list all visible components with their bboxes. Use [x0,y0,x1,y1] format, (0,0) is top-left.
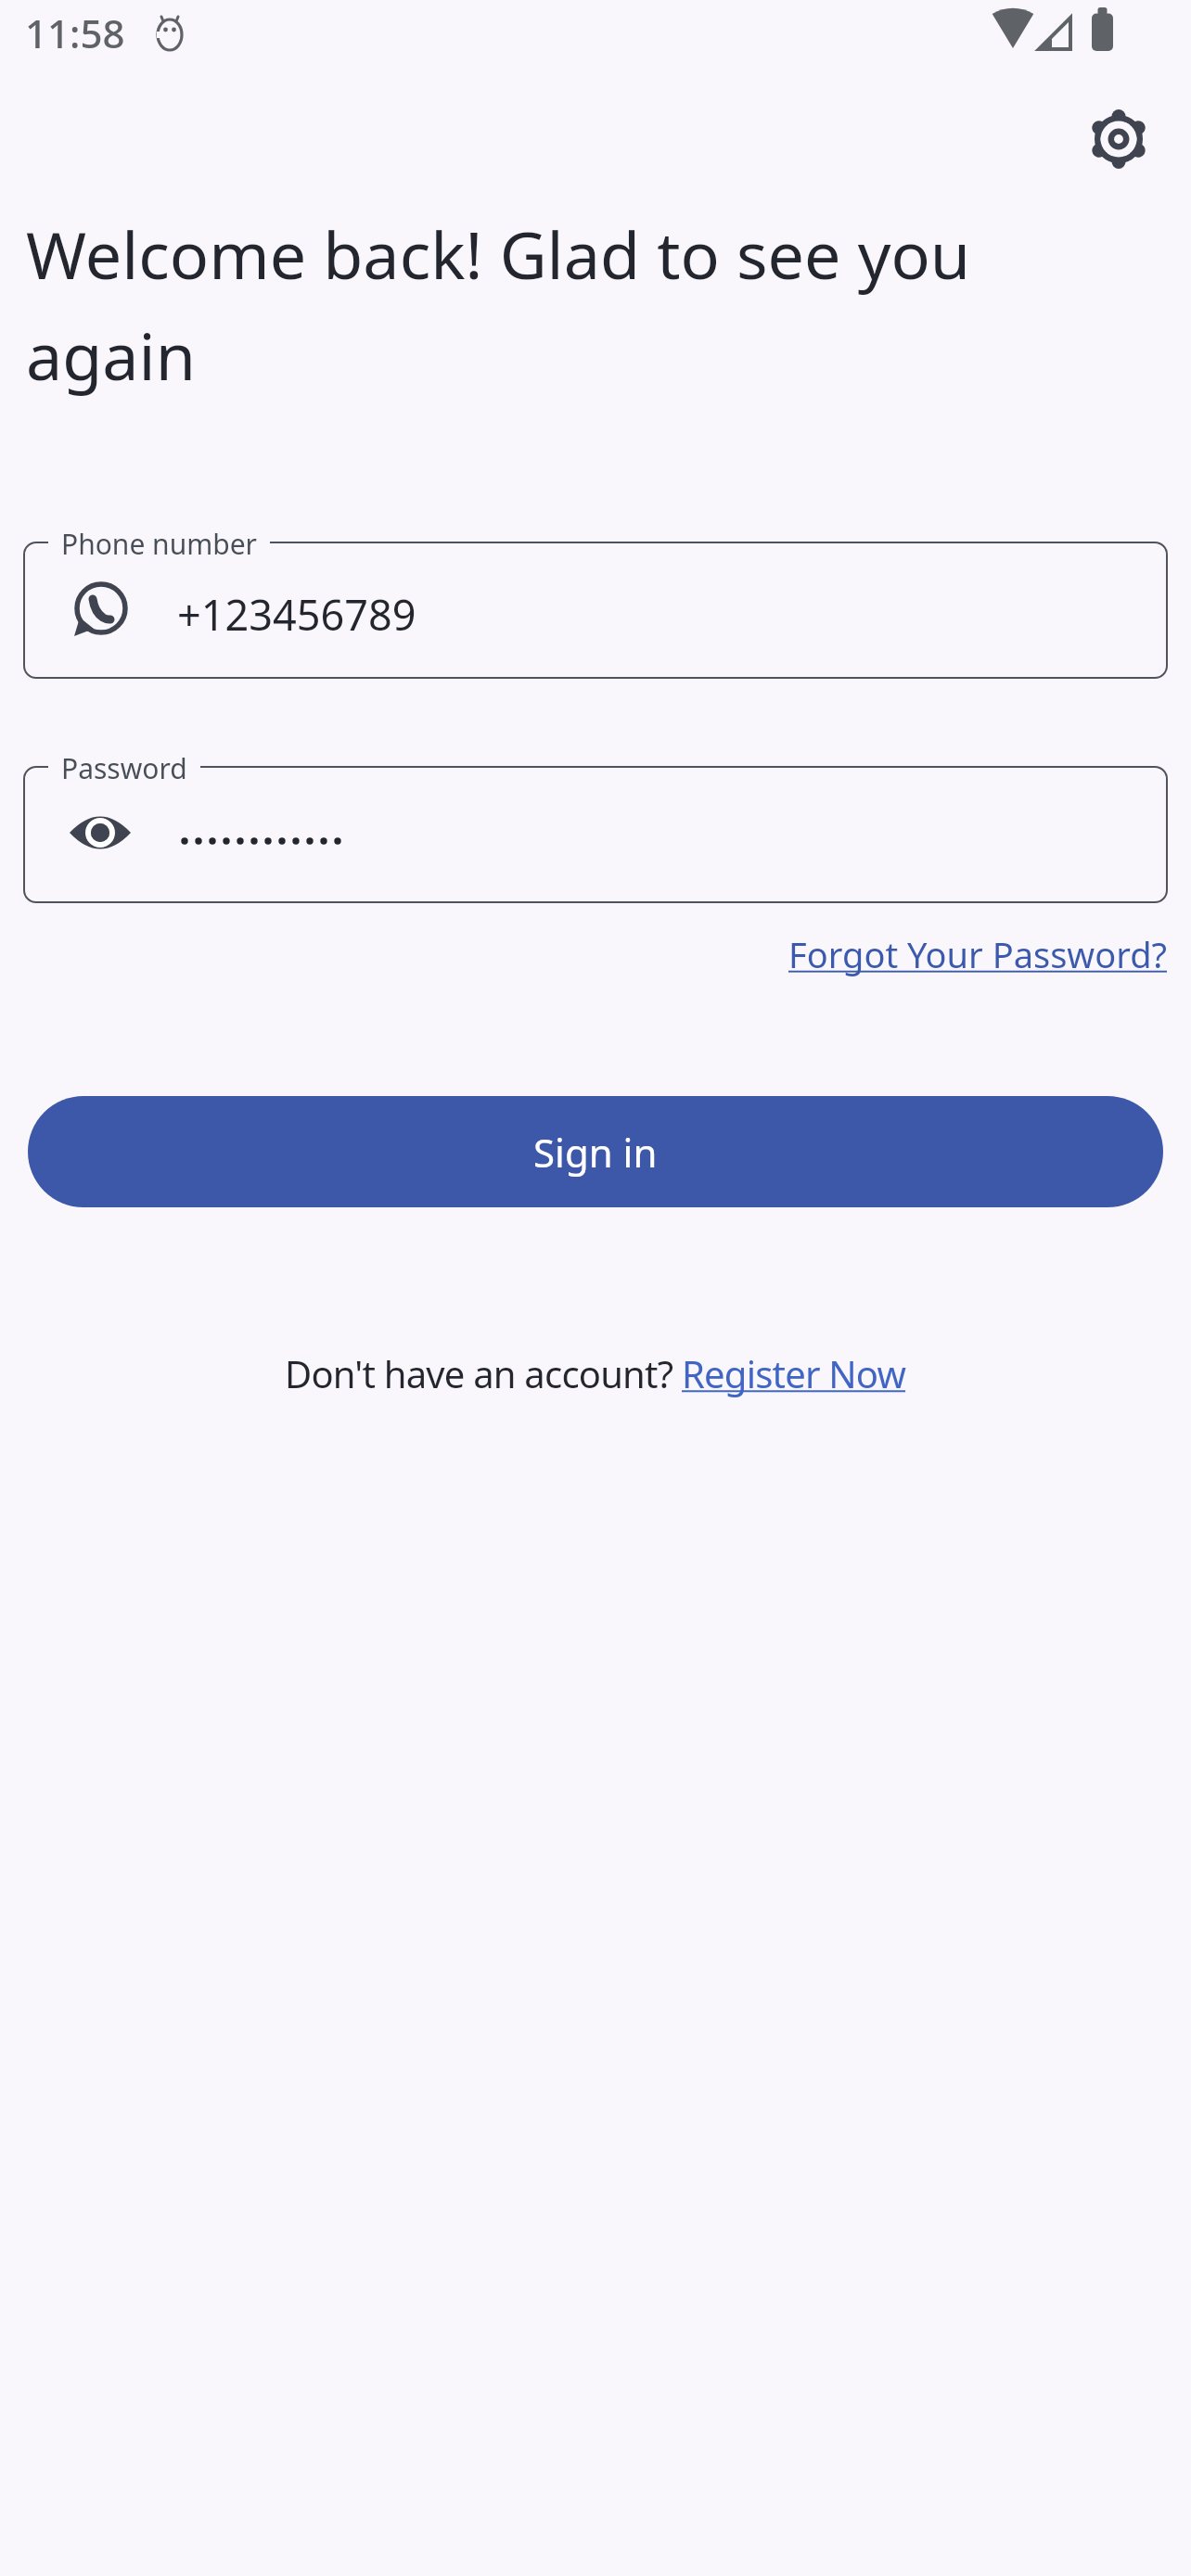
staticText: Don't have an account? [285,1348,682,1398]
staticText: Phone number [61,525,257,563]
staticText: Register Now [682,1348,906,1398]
button[interactable] [1082,102,1156,176]
button[interactable] [23,766,1168,903]
button[interactable]: Forgot Your Password? [788,930,1168,978]
staticText: Forgot Your Password? [788,930,1168,978]
staticText: Sign in [533,1126,658,1179]
staticText: Welcome back! Glad to see you again [26,210,971,399]
button[interactable] [23,542,1168,679]
button[interactable]: Register Now [682,1348,906,1398]
staticText: Password [61,749,187,787]
button[interactable]: Sign in [28,1096,1163,1207]
staticText: +123456789 [177,586,416,643]
staticText: 11:58 [25,6,125,59]
